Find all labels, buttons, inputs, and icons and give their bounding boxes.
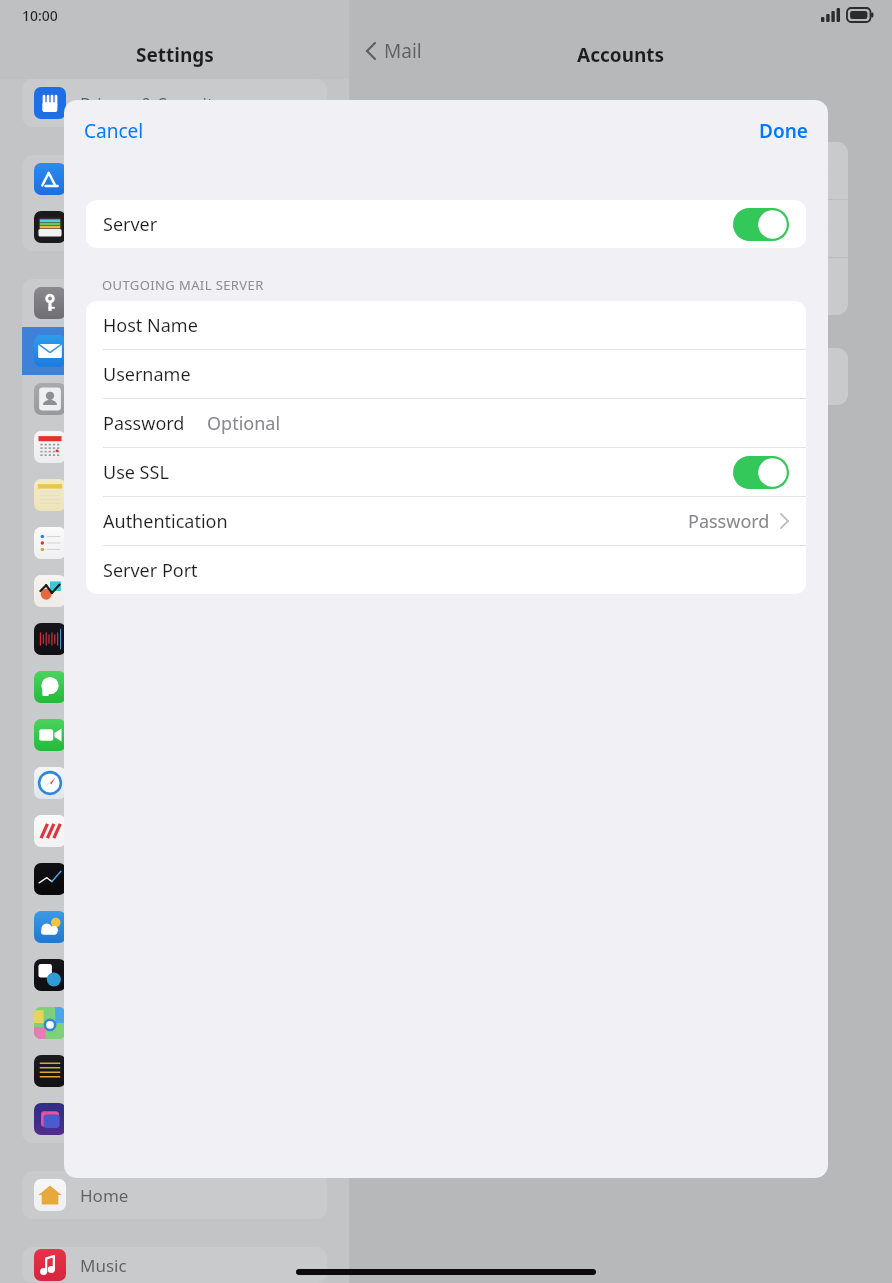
staticText: Notes: [80, 484, 128, 507]
staticText: Mail: [384, 38, 422, 64]
staticText: Done: [759, 118, 808, 144]
button[interactable]: Stocks: [22, 855, 327, 903]
staticText: Settings: [136, 42, 214, 68]
button[interactable]: Reminders: [22, 519, 327, 567]
staticText: 10:00: [22, 6, 58, 25]
button[interactable]: Home: [22, 1171, 327, 1219]
staticText: Optional: [207, 411, 281, 436]
staticText: Calendar: [80, 436, 152, 459]
staticText: Music: [80, 1254, 127, 1277]
staticText: Username: [103, 362, 191, 387]
button[interactable]: Server: [86, 200, 806, 248]
button[interactable]: Messages: [22, 663, 327, 711]
button[interactable]: [368, 200, 848, 257]
button[interactable]: Wallet: [22, 203, 327, 251]
button[interactable]: Done: [747, 112, 820, 150]
button[interactable]: Freeform: [22, 567, 327, 615]
button[interactable]: App Store: [22, 155, 327, 203]
staticText: OUTGOING MAIL SERVER: [102, 276, 264, 294]
button[interactable]: Weather: [22, 903, 327, 951]
staticText: Home: [80, 1184, 129, 1207]
staticText: Reminders: [80, 532, 167, 555]
button[interactable]: [368, 142, 848, 199]
button[interactable]: Password: [86, 399, 806, 447]
button[interactable]: Contacts: [22, 375, 327, 423]
staticText: Server: [103, 212, 158, 237]
button[interactable]: Mail: [22, 327, 327, 375]
button[interactable]: FaceTime: [22, 711, 327, 759]
button[interactable]: [368, 348, 848, 405]
button[interactable]: Maps: [22, 999, 327, 1047]
button[interactable]: On: [733, 456, 789, 489]
staticText: Authentication: [103, 509, 228, 534]
button[interactable]: Authentication: [86, 497, 806, 545]
button[interactable]: Translate: [22, 951, 327, 999]
staticText: Freeform: [80, 580, 154, 603]
button[interactable]: Voice Memos: [22, 615, 327, 663]
staticText: Contacts: [80, 388, 150, 411]
button[interactable]: Notes: [22, 471, 327, 519]
button[interactable]: [368, 258, 848, 315]
button[interactable]: Passwords: [22, 279, 327, 327]
staticText: Server Port: [103, 558, 198, 583]
button[interactable]: Mail: [364, 38, 422, 64]
button[interactable]: Server Port: [86, 546, 806, 594]
button[interactable]: Privacy & Security: [22, 79, 327, 127]
button[interactable]: Use SSL: [86, 448, 806, 496]
staticText: Passwords: [80, 292, 166, 315]
staticText: Host Name: [103, 313, 198, 338]
button[interactable]: Shortcuts: [22, 1047, 327, 1095]
button[interactable]: Username: [86, 350, 806, 398]
button[interactable]: Music: [22, 1247, 327, 1283]
staticText: Cancel: [84, 118, 144, 144]
button[interactable]: Safari: [22, 759, 327, 807]
staticText: Accounts: [577, 42, 665, 68]
button[interactable]: Calendar: [22, 423, 327, 471]
button[interactable]: Host Name: [86, 301, 806, 349]
staticText: Mail: [80, 340, 114, 363]
staticText: Privacy & Security: [80, 92, 222, 115]
button[interactable]: Home2: [22, 1095, 327, 1143]
staticText: Password: [688, 509, 770, 534]
button[interactable]: News: [22, 807, 327, 855]
staticText: Wallet: [80, 216, 130, 239]
staticText: Use SSL: [103, 460, 169, 485]
staticText: Password: [103, 411, 185, 436]
button[interactable]: Cancel: [72, 112, 156, 150]
button[interactable]: On: [733, 208, 789, 241]
